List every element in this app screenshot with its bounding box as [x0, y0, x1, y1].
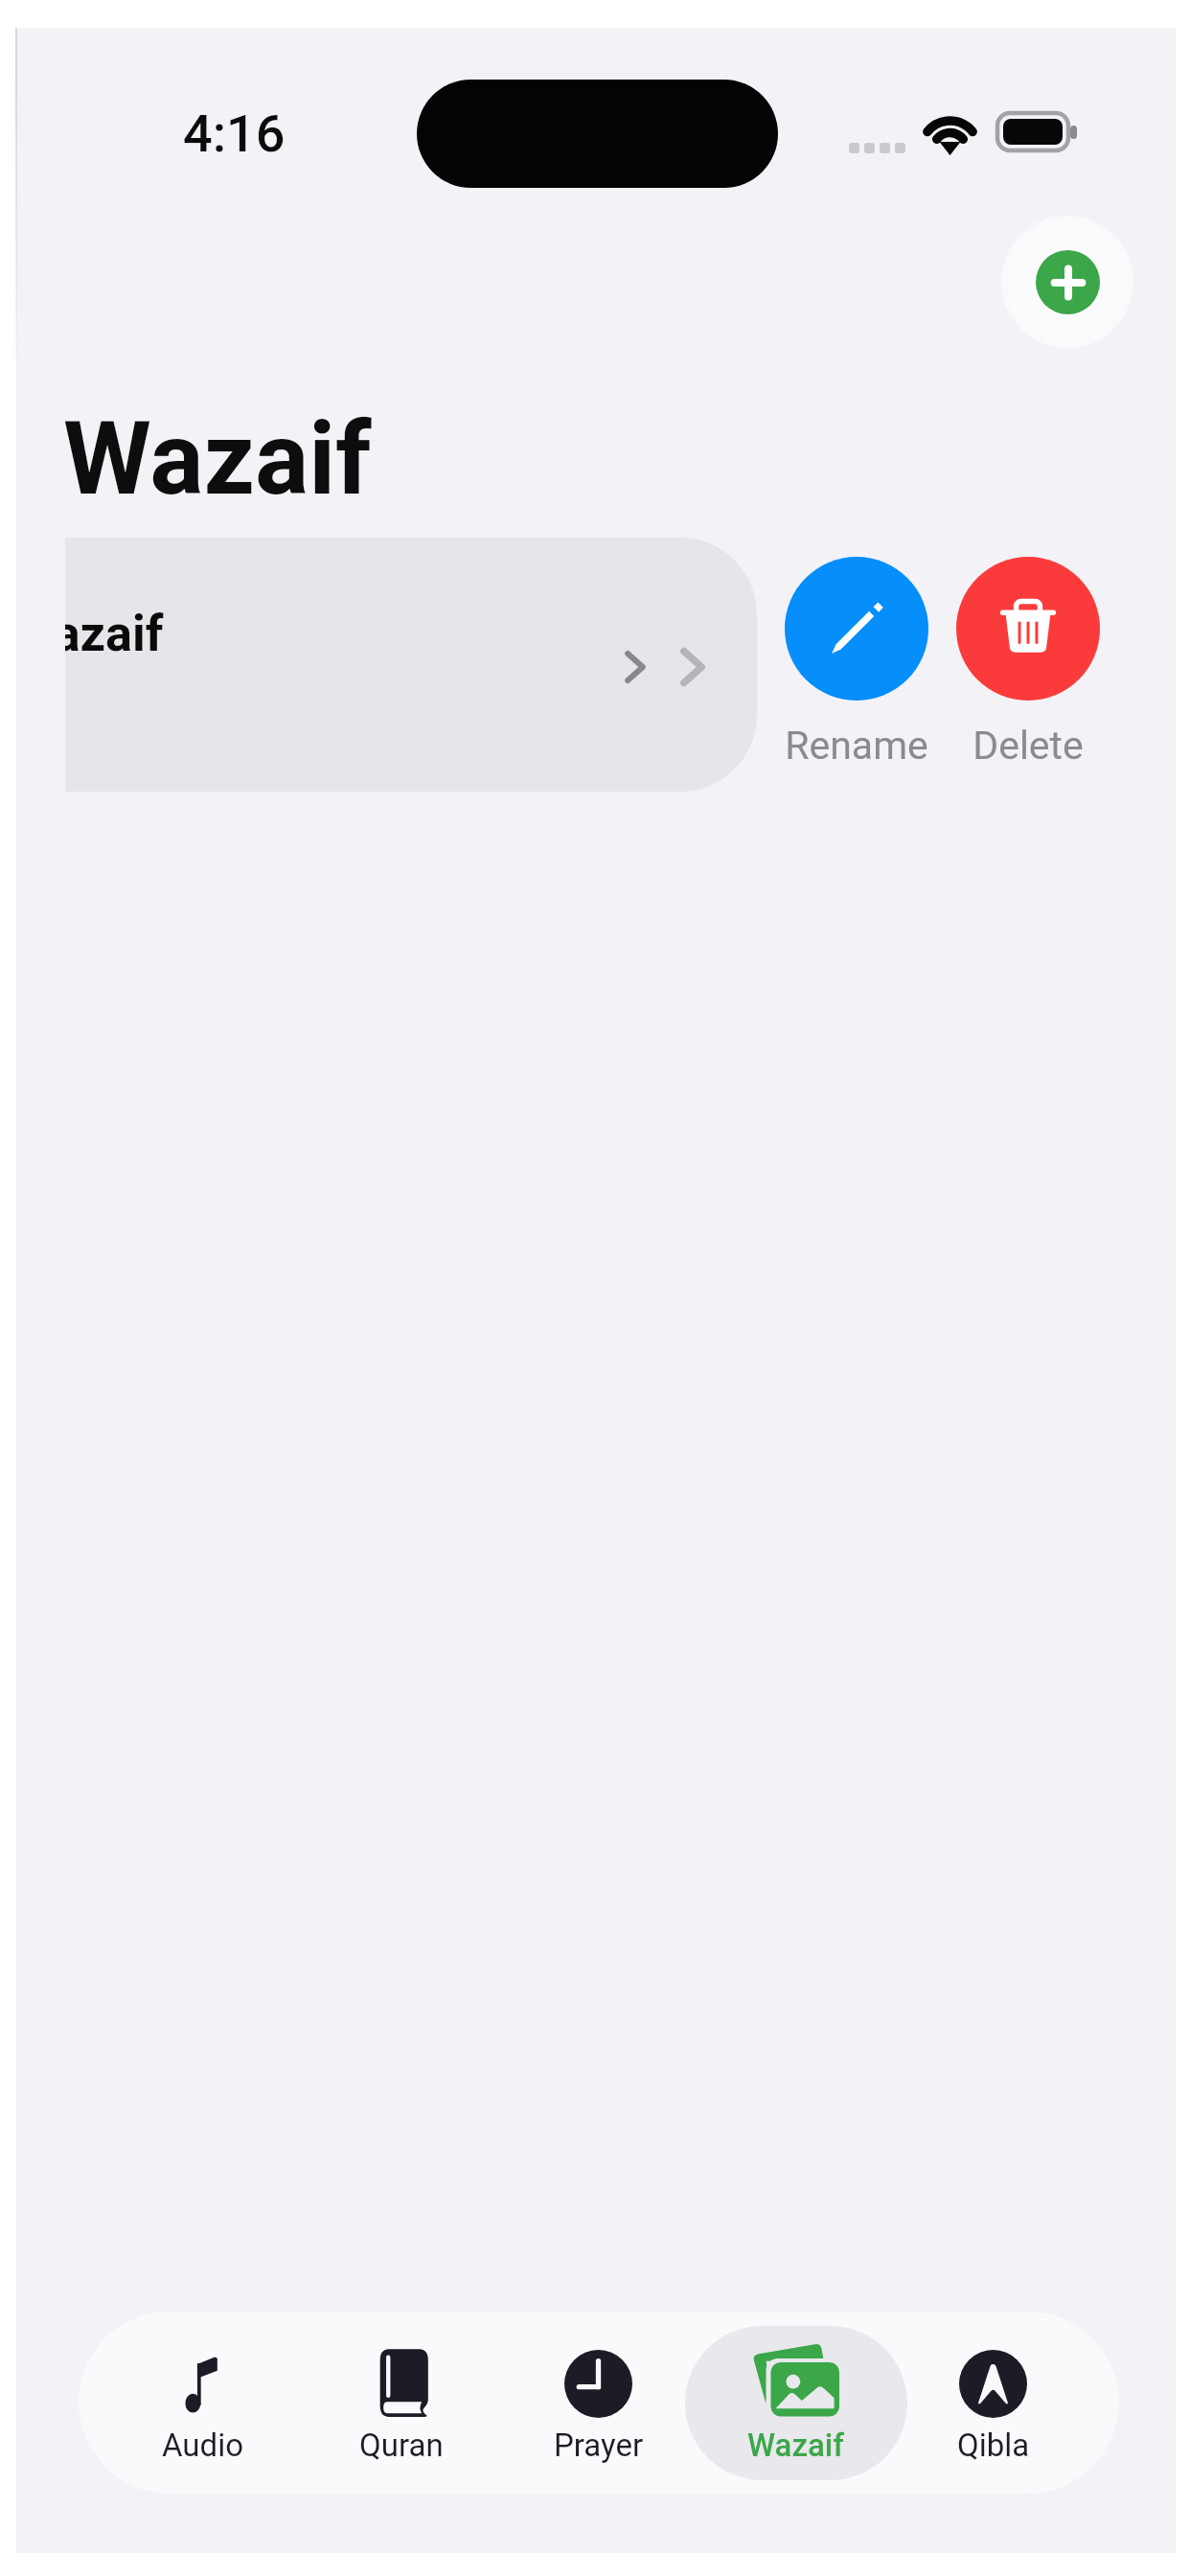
button[interactable]: Quran	[290, 2326, 513, 2480]
staticText: Rename	[785, 723, 928, 769]
button[interactable]: Qibla	[882, 2326, 1105, 2480]
staticText: Prayer	[554, 2426, 644, 2464]
staticText: Audio	[162, 2426, 243, 2464]
button[interactable]: Prayer	[488, 2326, 710, 2480]
staticText: Wazaif	[747, 2426, 845, 2464]
button[interactable]: Wazaif	[685, 2326, 907, 2480]
button[interactable]: Delete	[932, 557, 1124, 769]
staticText: Wazaif	[65, 605, 164, 663]
staticText: Quran	[359, 2426, 444, 2464]
staticText: 4:16	[183, 103, 286, 164]
button[interactable]: Audio	[91, 2326, 313, 2480]
staticText: Wazaif	[63, 401, 372, 518]
button[interactable]: Rename	[761, 557, 952, 769]
staticText: Delete	[973, 723, 1084, 769]
button[interactable]: Add	[1005, 219, 1130, 344]
button[interactable]: Wazaif	[65, 538, 757, 792]
staticText: Qibla	[957, 2426, 1030, 2464]
